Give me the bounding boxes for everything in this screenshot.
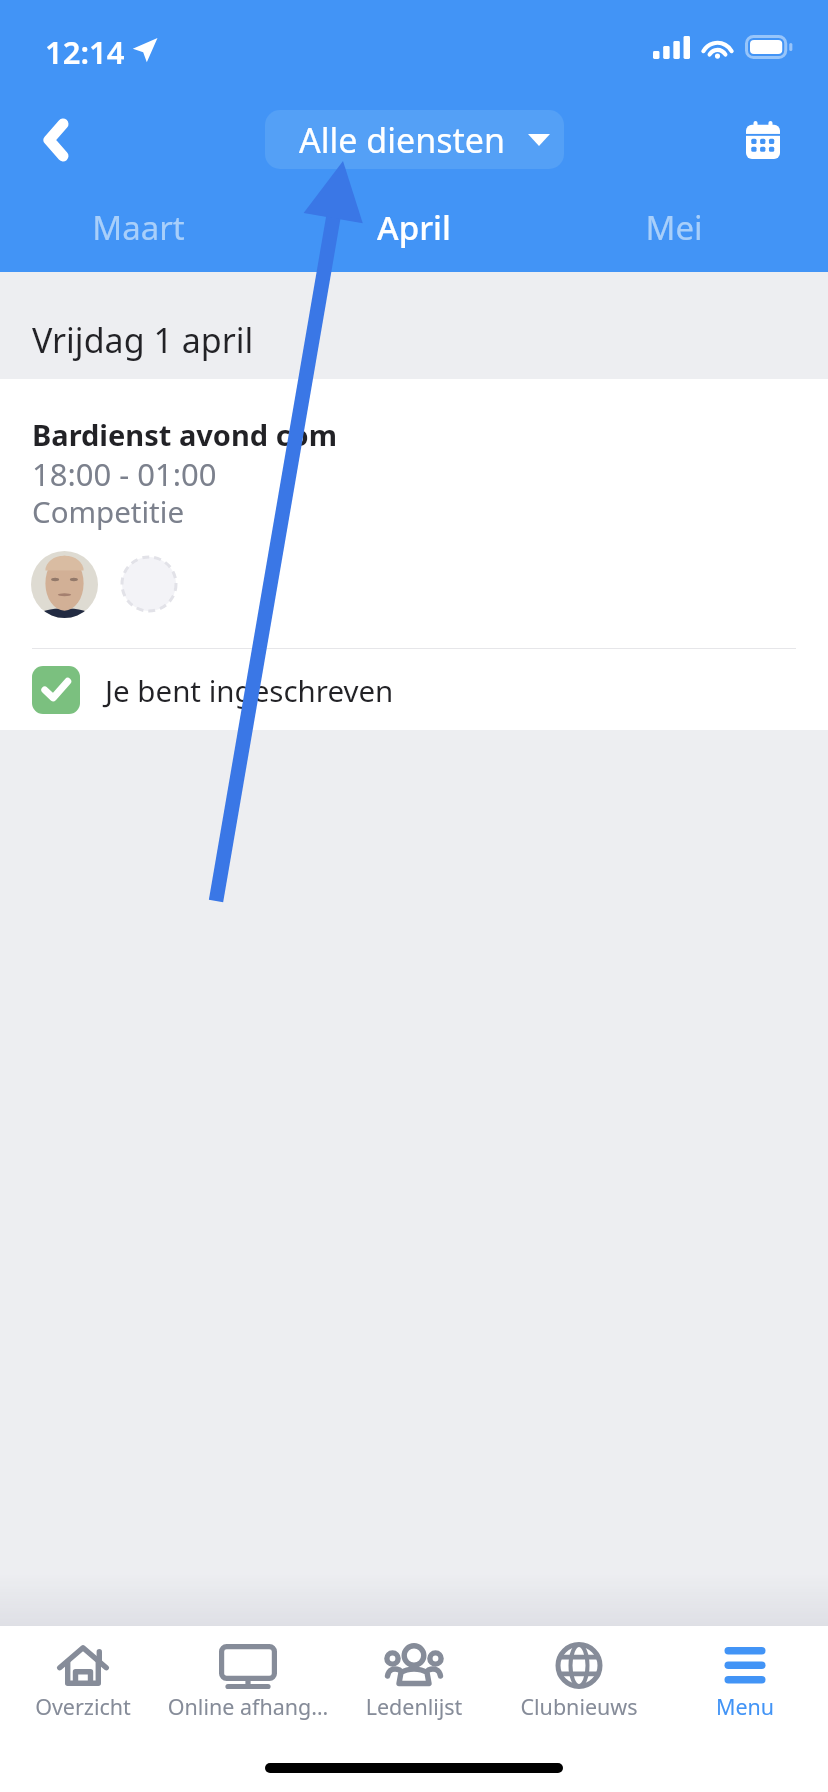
staticText: April xyxy=(377,205,451,250)
button[interactable]: Alle diensten xyxy=(265,110,564,169)
staticText: Maart xyxy=(92,205,185,250)
staticText: Online afhang… xyxy=(166,1692,330,1721)
staticText: Competitie xyxy=(32,491,185,531)
button[interactable]: Online afhang… xyxy=(166,1626,330,1726)
button[interactable]: Ledenlijst xyxy=(332,1626,496,1726)
staticText: Vrijdag 1 april xyxy=(32,317,254,363)
button[interactable]: Menu xyxy=(663,1626,827,1726)
button[interactable]: Calendar xyxy=(728,105,798,175)
button[interactable]: Clubnieuws xyxy=(497,1626,661,1726)
button[interactable]: Overzicht xyxy=(1,1626,165,1726)
button[interactable]: Back xyxy=(21,97,91,183)
staticText: Clubnieuws xyxy=(497,1692,661,1721)
staticText: Ledenlijst xyxy=(332,1692,496,1721)
staticText: Mei xyxy=(645,205,703,250)
button[interactable]: Je bent ingeschreven xyxy=(0,649,828,730)
button[interactable]: Mei xyxy=(582,186,766,272)
staticText: Alle diensten xyxy=(299,117,505,163)
staticText: Je bent ingeschreven xyxy=(105,670,394,710)
staticText: Overzicht xyxy=(1,1692,165,1721)
button[interactable]: April xyxy=(322,186,506,272)
staticText: Menu xyxy=(663,1692,827,1721)
staticText: 18:00 - 01:00 xyxy=(32,453,217,495)
button[interactable]: Maart xyxy=(46,186,230,272)
staticText: Bardienst avond com xyxy=(32,415,338,454)
staticText: 12:14 xyxy=(45,31,125,73)
